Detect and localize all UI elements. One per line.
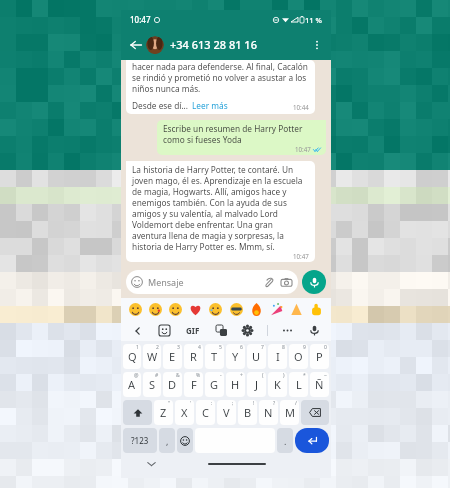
staticText: 4 <box>198 344 201 351</box>
button[interactable]: kiss <box>148 302 163 317</box>
button[interactable]: Mensaje <box>126 270 298 294</box>
button[interactable]: Escribe un resumen de Harry Potter como … <box>157 120 326 155</box>
staticText: X <box>181 405 188 420</box>
button[interactable]: R <box>184 344 203 369</box>
button[interactable]: grin <box>168 302 183 317</box>
staticText: # <box>155 372 159 379</box>
button[interactable]: V <box>217 400 236 425</box>
button[interactable]: Z <box>154 400 173 425</box>
staticText: 0 <box>324 344 327 351</box>
staticText: @ <box>134 372 139 379</box>
staticText: I <box>276 349 280 364</box>
staticText: L <box>296 377 302 392</box>
staticText: ? <box>273 400 276 407</box>
button[interactable]: U <box>247 344 266 369</box>
button[interactable]: More options <box>307 35 326 54</box>
staticText: ( <box>262 372 264 379</box>
staticText: O <box>294 349 303 364</box>
button[interactable]: party <box>269 302 284 317</box>
button[interactable]: Backspace <box>301 400 329 425</box>
staticText: 10:44 <box>293 103 309 111</box>
staticText: " <box>168 400 171 407</box>
staticText: % <box>196 372 201 379</box>
staticText: H <box>231 377 240 392</box>
button[interactable]: Q <box>123 344 141 369</box>
staticText: U <box>252 349 261 364</box>
button[interactable]: cry <box>208 302 223 317</box>
staticText: J <box>255 377 259 392</box>
staticText: GIF <box>186 325 200 336</box>
staticText: A <box>128 377 136 392</box>
button[interactable]: heart <box>188 302 203 317</box>
staticText: R <box>190 349 197 364</box>
button[interactable]: Ñ <box>310 372 329 397</box>
button[interactable]: J <box>247 372 266 397</box>
staticText: Leer más <box>192 100 228 111</box>
staticText: La historia de Harry Potter, te contaré.… <box>132 164 309 252</box>
button[interactable]: More <box>280 323 295 338</box>
button[interactable]: F <box>184 372 203 397</box>
staticText: * <box>303 372 306 379</box>
button[interactable]: Translate <box>214 323 229 338</box>
staticText: C <box>202 405 209 420</box>
staticText: Q <box>128 349 137 364</box>
button[interactable]: T <box>205 344 224 369</box>
button[interactable]: L <box>289 372 308 397</box>
button[interactable]: A <box>123 372 141 397</box>
button[interactable]: H <box>226 372 245 397</box>
staticText: + <box>240 372 243 379</box>
button[interactable]: S <box>143 372 161 397</box>
staticText: 7 <box>261 344 264 351</box>
button[interactable]: O <box>289 344 308 369</box>
staticText: 3 <box>177 344 180 351</box>
staticText: S <box>149 377 156 392</box>
button[interactable]: thumb <box>309 302 324 317</box>
button[interactable]: Back <box>126 35 145 54</box>
button[interactable]: , <box>159 428 175 453</box>
button[interactable]: Voice input <box>307 323 322 338</box>
button[interactable]: P <box>310 344 329 369</box>
staticText: 10:47 <box>295 145 311 153</box>
button[interactable]: Y <box>226 344 245 369</box>
staticText: B <box>244 405 252 420</box>
button[interactable]: Voice message <box>302 270 326 294</box>
button[interactable]: cool <box>229 302 244 317</box>
staticText: : <box>211 400 213 407</box>
staticText: K <box>274 377 281 392</box>
button[interactable]: Stickers <box>157 323 172 338</box>
button[interactable]: I <box>268 344 287 369</box>
button[interactable]: La historia de Harry Potter, te contaré.… <box>126 161 315 262</box>
button[interactable]: G <box>205 372 224 397</box>
staticText: N <box>264 405 273 420</box>
button[interactable]: Settings <box>240 323 255 338</box>
button[interactable]: . <box>277 428 293 453</box>
button[interactable]: laugh <box>128 302 143 317</box>
button[interactable]: N <box>259 400 278 425</box>
button[interactable]: X <box>175 400 194 425</box>
button[interactable]: W <box>143 344 161 369</box>
button[interactable]: ?123 <box>123 428 157 453</box>
button[interactable]: Hide keyboard <box>145 458 157 470</box>
button[interactable]: fire <box>249 302 264 317</box>
button[interactable]: pray <box>289 302 304 317</box>
button[interactable]: Back <box>130 323 145 338</box>
button[interactable]: Emoji <box>177 428 193 453</box>
button[interactable]: C <box>196 400 215 425</box>
button[interactable]: Attach <box>262 276 275 289</box>
staticText: T <box>211 349 218 364</box>
button[interactable]: Enter <box>295 428 329 453</box>
button[interactable]: B <box>238 400 257 425</box>
staticText: Escribe un resumen de Harry Potter como … <box>163 123 321 145</box>
staticText: 5 <box>219 344 222 351</box>
button[interactable]: D <box>163 372 182 397</box>
button[interactable]: K <box>268 372 287 397</box>
button[interactable]: GIF <box>184 325 202 336</box>
button[interactable]: Camera <box>280 276 293 289</box>
button[interactable]: Shift <box>123 400 152 425</box>
staticText: P <box>316 349 323 364</box>
button[interactable]: E <box>163 344 182 369</box>
button[interactable]: Contact photo <box>146 36 164 54</box>
button[interactable]: hacer nada para defenderse. Al final, Ca… <box>126 60 315 114</box>
button[interactable]: M <box>280 400 299 425</box>
